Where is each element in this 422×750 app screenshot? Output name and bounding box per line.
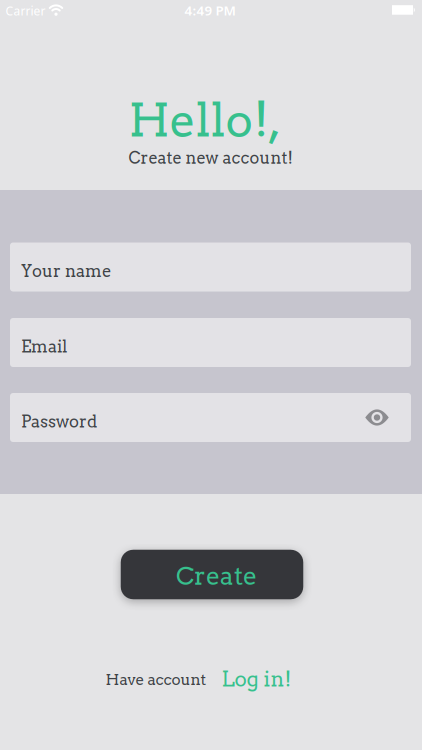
staticText: 4:49 PM <box>184 1 235 19</box>
button[interactable]: Your name <box>10 242 411 291</box>
staticText: Log in! <box>221 666 291 691</box>
staticText: Have account <box>105 670 206 689</box>
staticText: Email <box>21 336 67 356</box>
staticText: Create <box>176 561 257 591</box>
staticText: Password <box>21 411 97 431</box>
button[interactable]: Create <box>121 550 303 599</box>
button[interactable]: Log in! <box>221 666 291 691</box>
staticText: Hello!, <box>128 92 281 148</box>
button[interactable]: Show password <box>357 395 397 439</box>
staticText: Create new account! <box>128 148 292 168</box>
button[interactable]: Email <box>10 318 411 367</box>
staticText: Your name <box>21 261 112 281</box>
staticText: Carrier <box>5 3 45 19</box>
button[interactable]: Password <box>10 393 411 442</box>
